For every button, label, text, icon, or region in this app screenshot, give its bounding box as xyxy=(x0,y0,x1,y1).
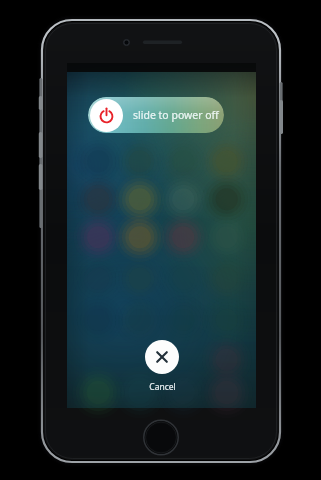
other: Slide to power off xyxy=(90,99,123,132)
staticText: Cancel xyxy=(149,381,176,393)
other: Cancel xyxy=(145,340,179,374)
button[interactable]: Cancel xyxy=(145,340,179,393)
button[interactable]: Slide to power off xyxy=(88,97,224,133)
staticText: slide to power off xyxy=(133,108,219,122)
